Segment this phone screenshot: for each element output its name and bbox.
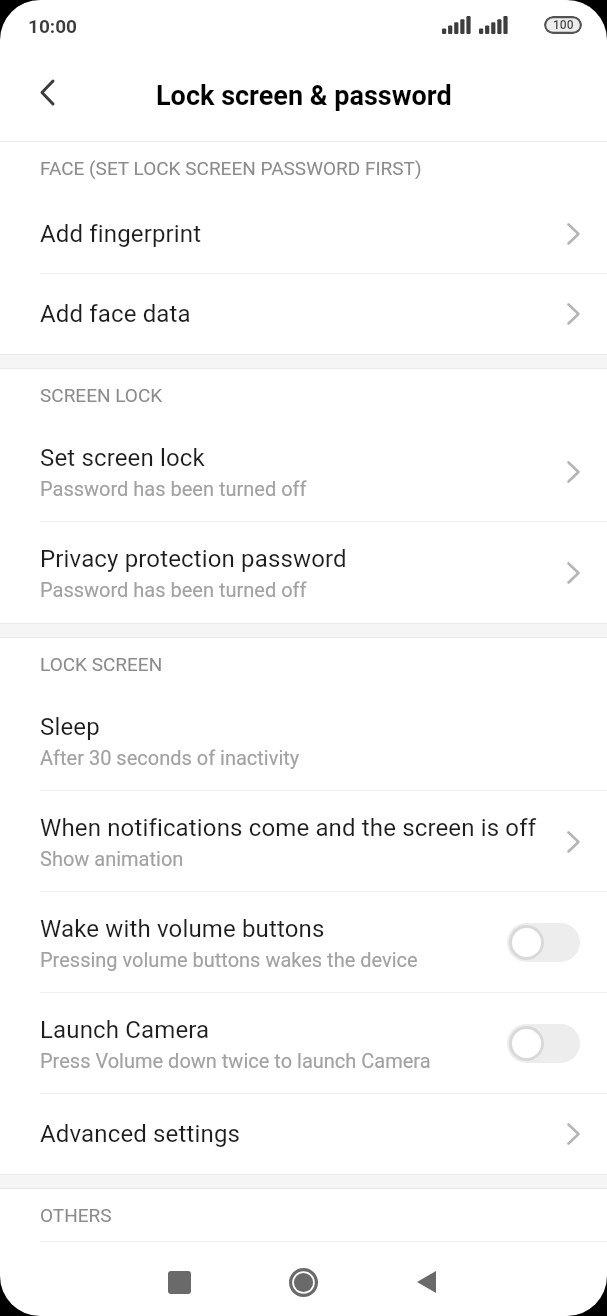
button[interactable]: Sleep bbox=[0, 690, 607, 791]
button[interactable] bbox=[40, 79, 55, 106]
staticText: Sleep bbox=[40, 713, 100, 741]
staticText: After 30 seconds of inactivity bbox=[40, 746, 300, 769]
staticText: 100 bbox=[553, 18, 574, 32]
button[interactable]: Wake with volume buttons bbox=[0, 892, 607, 993]
button[interactable]: Advanced settings bbox=[0, 1094, 607, 1174]
button[interactable]: When notifications come and the screen i… bbox=[0, 791, 607, 892]
button[interactable]: Add face data bbox=[0, 274, 607, 354]
staticText: Password has been turned off bbox=[40, 477, 307, 500]
staticText: Lock screen & password bbox=[156, 80, 452, 112]
staticText: When notifications come and the screen i… bbox=[40, 814, 537, 842]
staticText: Privacy protection password bbox=[40, 545, 347, 573]
button[interactable] bbox=[168, 1271, 191, 1294]
staticText: OTHERS bbox=[40, 1204, 112, 1226]
button[interactable] bbox=[416, 1270, 437, 1294]
staticText: 10:00 bbox=[28, 15, 77, 37]
button[interactable]: Add fingerprint bbox=[0, 194, 607, 274]
staticText: FACE (SET LOCK SCREEN PASSWORD FIRST) bbox=[40, 157, 422, 179]
staticText: Wake with volume buttons bbox=[40, 915, 325, 943]
staticText: Add face data bbox=[40, 300, 567, 328]
button[interactable] bbox=[289, 1268, 318, 1297]
button[interactable]: Set screen lock bbox=[0, 421, 607, 522]
staticText: Set screen lock bbox=[40, 444, 205, 472]
staticText: Pressing volume buttons wakes the device bbox=[40, 948, 418, 971]
button[interactable]: Privacy protection password bbox=[0, 522, 607, 623]
staticText: Launch Camera bbox=[40, 1016, 210, 1044]
staticText: Advanced settings bbox=[40, 1120, 567, 1148]
staticText: SCREEN LOCK bbox=[40, 384, 163, 406]
staticText: Show animation bbox=[40, 847, 184, 870]
staticText: Password has been turned off bbox=[40, 578, 307, 601]
staticText: LOCK SCREEN bbox=[40, 653, 163, 675]
staticText: Press Volume down twice to launch Camera bbox=[40, 1049, 431, 1072]
staticText: Add fingerprint bbox=[40, 220, 567, 248]
button[interactable]: Launch Camera bbox=[0, 993, 607, 1094]
